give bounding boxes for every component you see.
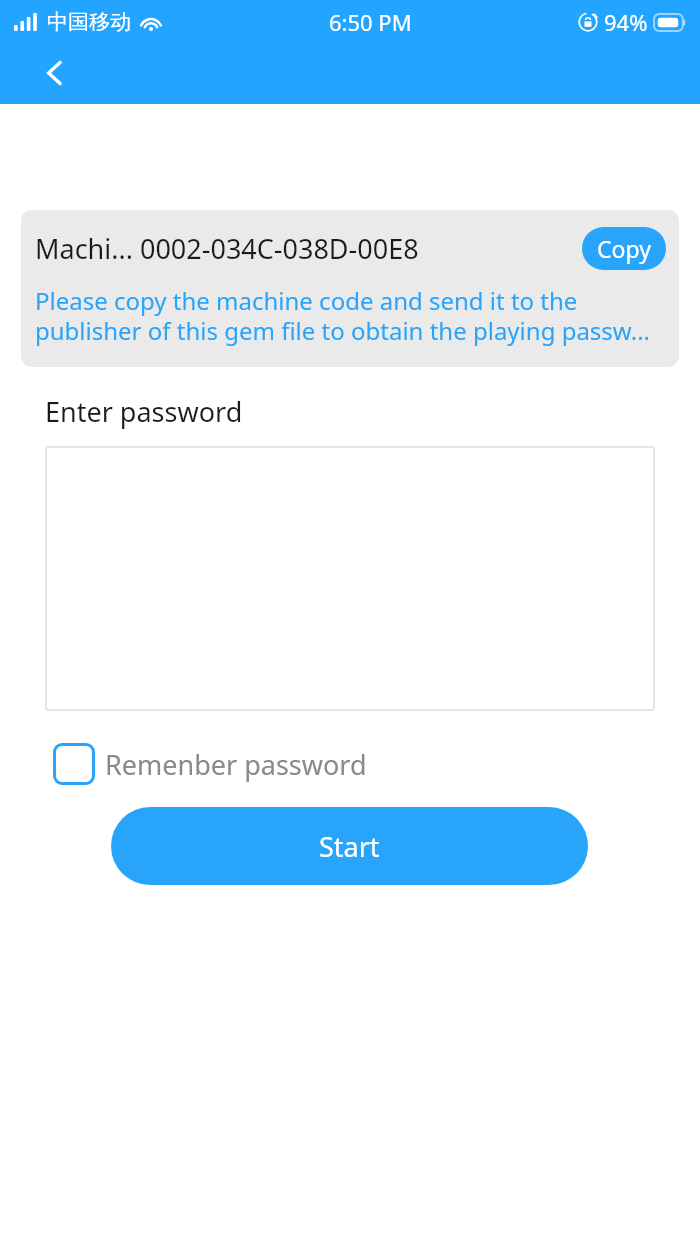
- button[interactable]: Copy: [582, 227, 666, 270]
- staticText: Enter password: [45, 393, 243, 430]
- button[interactable]: Back: [26, 44, 84, 102]
- staticText: Start: [319, 828, 380, 865]
- button[interactable]: Machi... 0002-034C-038D-00E8: [21, 210, 679, 367]
- button[interactable]: [45, 446, 655, 711]
- staticText: 6:50 PM: [329, 7, 412, 37]
- staticText: Machi... 0002-034C-038D-00E8: [35, 230, 574, 267]
- staticText: Remenber password: [105, 746, 367, 783]
- button[interactable]: Remenber password: [53, 743, 367, 785]
- staticText: Copy: [597, 233, 651, 264]
- staticText: 中国移动: [47, 9, 131, 35]
- button[interactable]: Start: [111, 807, 588, 885]
- staticText: Please copy the machine code and send it…: [35, 284, 666, 347]
- staticText: 94%: [604, 7, 648, 37]
